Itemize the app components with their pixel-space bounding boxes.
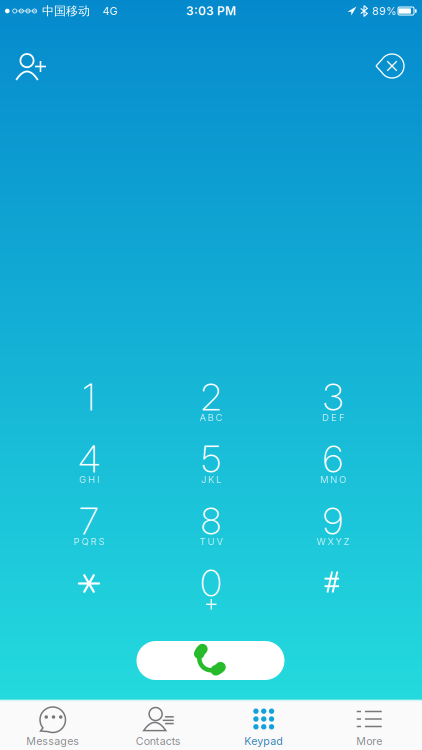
staticText: 3:03 PM	[186, 4, 236, 18]
staticText: M N O	[320, 474, 346, 485]
staticText: Keypad	[244, 735, 283, 747]
button[interactable]: #	[283, 554, 383, 612]
staticText: 6	[322, 437, 343, 481]
staticText: D E F	[322, 412, 344, 423]
button[interactable]: 3	[283, 368, 383, 426]
button[interactable]: 9	[283, 492, 383, 550]
button[interactable]	[376, 54, 404, 78]
button[interactable]: Add Contact	[14, 51, 48, 83]
staticText: More	[356, 735, 382, 747]
staticText: 89%	[372, 5, 396, 17]
staticText: P Q R S	[73, 536, 104, 547]
staticText: 9	[322, 499, 343, 543]
button[interactable]: Call	[136, 641, 284, 680]
staticText: 中国移动	[42, 4, 90, 18]
button[interactable]: More	[316, 700, 422, 750]
staticText: 8	[200, 499, 221, 543]
button[interactable]: 5	[161, 430, 261, 488]
staticText: G H I	[79, 474, 99, 485]
staticText: 1	[82, 375, 95, 419]
button[interactable]: *	[39, 554, 139, 612]
staticText: A B C	[199, 412, 222, 423]
staticText: 3	[322, 375, 343, 419]
button[interactable]: 1	[39, 368, 139, 426]
staticText: W X Y Z	[316, 536, 349, 547]
button[interactable]: 0	[161, 554, 261, 612]
staticText: T U V	[199, 536, 222, 547]
button[interactable]: Messages	[0, 700, 105, 750]
button[interactable]: 2	[161, 368, 261, 426]
button[interactable]: 6	[283, 430, 383, 488]
staticText: 0	[200, 561, 222, 605]
staticText: 4G	[102, 5, 117, 17]
button[interactable]: 7	[39, 492, 139, 550]
staticText: J K L	[201, 474, 221, 485]
staticText: 2	[200, 375, 221, 419]
staticText: Messages	[26, 735, 79, 747]
staticText: Contacts	[136, 735, 181, 747]
button[interactable]: 8	[161, 492, 261, 550]
staticText: 5	[201, 437, 221, 481]
staticText: 4	[78, 437, 100, 481]
staticText: 7	[79, 499, 99, 543]
button[interactable]: 4	[39, 430, 139, 488]
button[interactable]: Keypad	[211, 700, 316, 750]
button[interactable]: Contacts	[105, 700, 211, 750]
